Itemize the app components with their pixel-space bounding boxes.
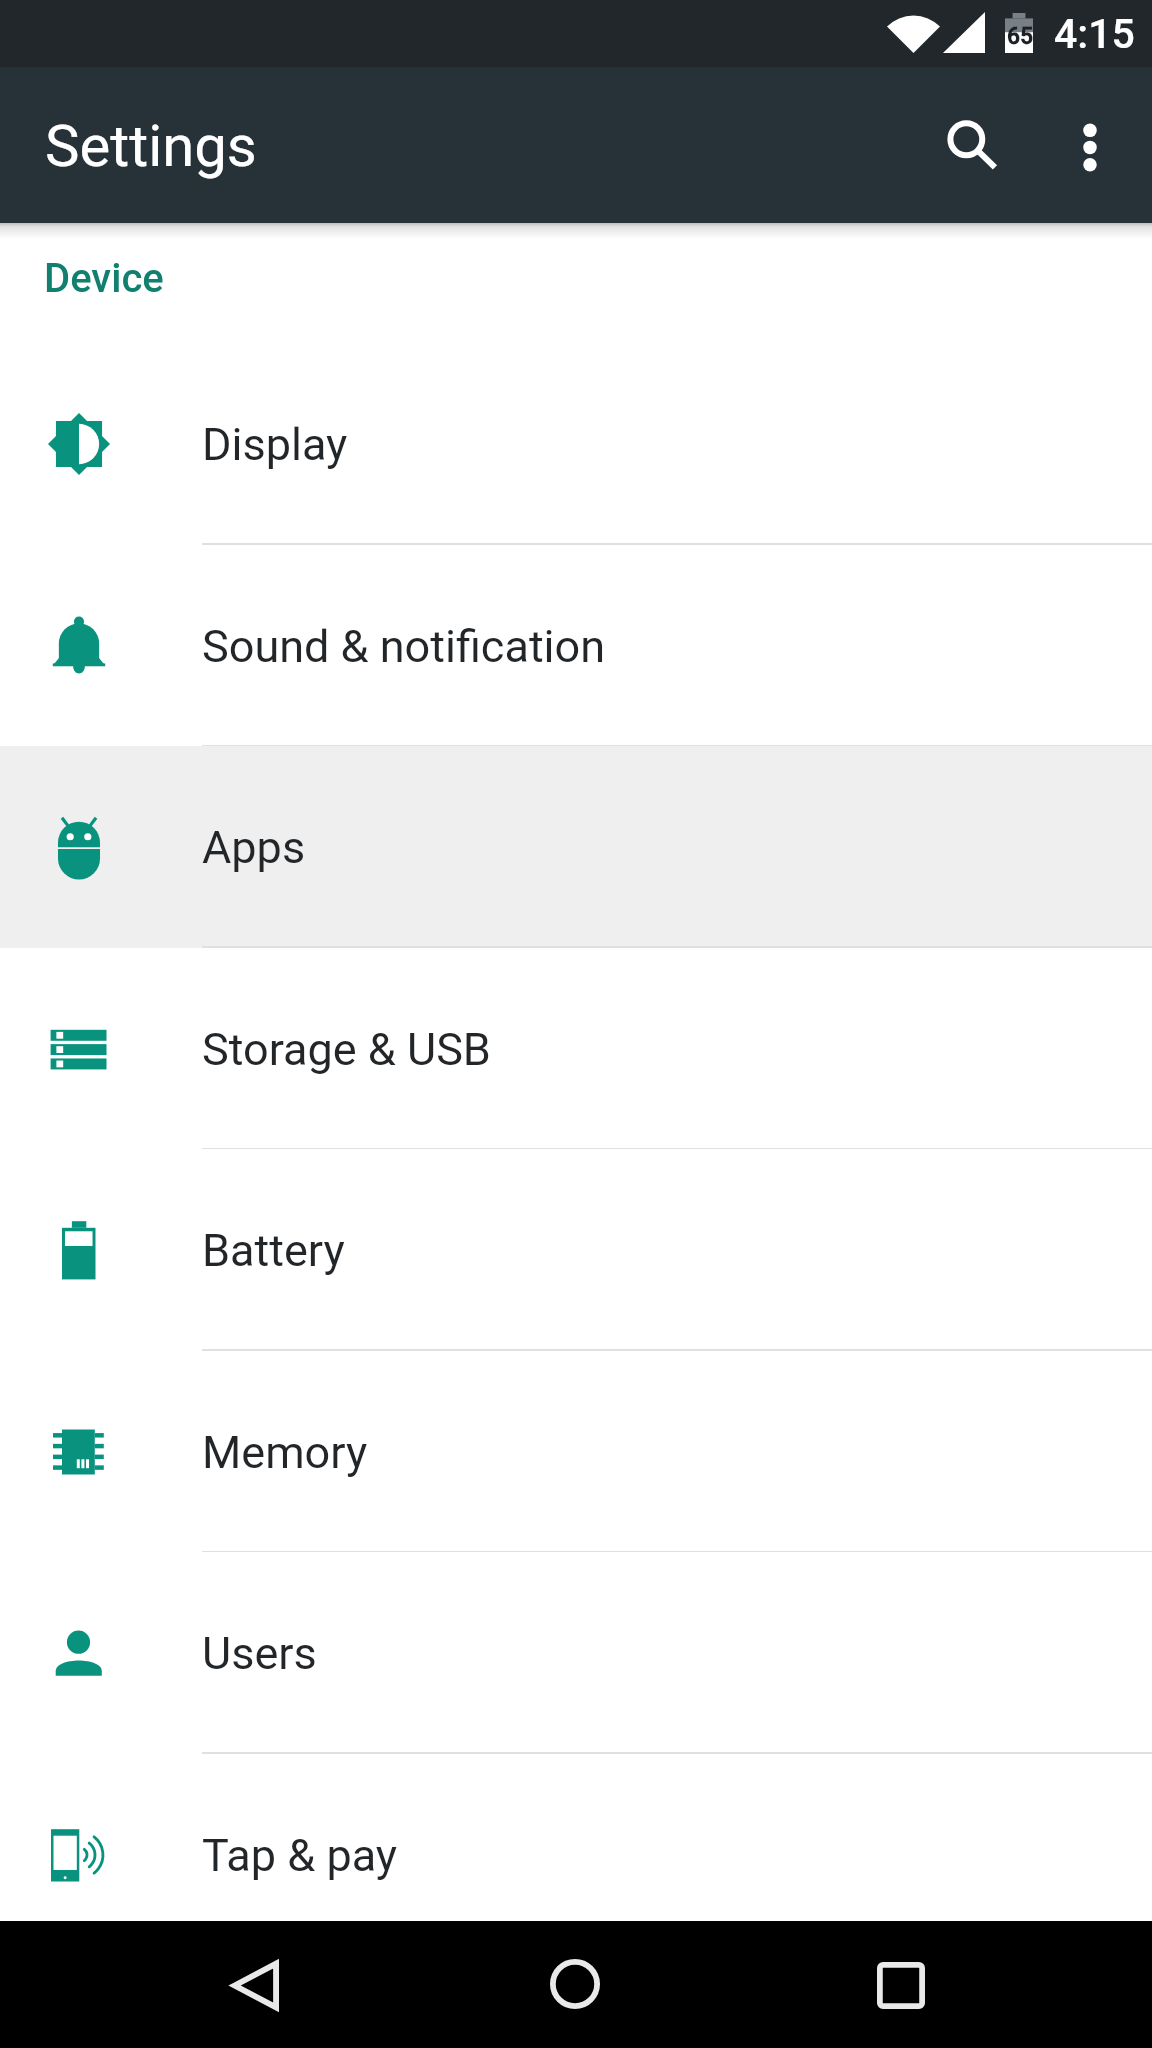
staticText: Memory — [202, 1426, 368, 1479]
button[interactable]: Search — [916, 90, 1028, 202]
button[interactable]: Back — [198, 1928, 312, 2042]
button[interactable]: Apps — [0, 746, 1152, 948]
button[interactable]: Sound & notification — [0, 545, 1152, 747]
staticText: 65 — [1007, 23, 1034, 50]
button[interactable]: Recent apps — [844, 1928, 958, 2042]
button[interactable]: Home — [518, 1927, 632, 2041]
button[interactable]: Storage & USB — [0, 948, 1152, 1150]
button[interactable]: Memory — [0, 1351, 1152, 1553]
staticText: Tap & pay — [202, 1829, 398, 1882]
staticText: Settings — [45, 112, 257, 180]
staticText: 4:15 — [1054, 10, 1135, 58]
button[interactable]: Tap & pay — [0, 1754, 1152, 1956]
staticText: Storage & USB — [202, 1023, 491, 1076]
button[interactable]: Display — [0, 343, 1152, 545]
button[interactable]: Battery — [0, 1149, 1152, 1351]
staticText: Users — [202, 1627, 317, 1680]
staticText: Sound & notification — [202, 620, 606, 673]
button[interactable]: More options — [1034, 93, 1146, 205]
button[interactable]: Users — [0, 1552, 1152, 1754]
staticText: Battery — [202, 1224, 345, 1277]
staticText: Display — [202, 418, 348, 471]
staticText: Apps — [202, 821, 306, 874]
staticText: Device — [44, 255, 164, 302]
